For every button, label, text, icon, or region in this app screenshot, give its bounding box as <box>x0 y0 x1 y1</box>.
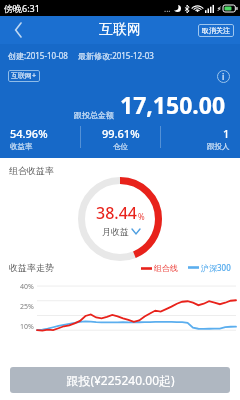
staticText: ⚡ <box>217 5 222 12</box>
staticText: 创建:2015-10-08 <box>8 50 68 61</box>
staticText: 收益率 <box>10 142 33 151</box>
staticText: 傍晚6:31 <box>4 2 40 14</box>
staticText: 组合线 <box>154 263 178 273</box>
staticText: % <box>138 211 145 222</box>
button[interactable]: Info <box>214 67 232 85</box>
button[interactable]: 互联网+ <box>8 70 40 82</box>
staticText: 25% <box>20 302 34 312</box>
staticText: 54.96% <box>10 126 48 141</box>
staticText: 互联网+ <box>11 71 37 81</box>
staticText: 组合收益率 <box>9 165 54 176</box>
staticText: 10% <box>20 322 34 332</box>
staticText: 仓位 <box>113 142 128 151</box>
staticText: ... <box>164 3 171 14</box>
button[interactable]: 取消关注 <box>198 24 234 37</box>
button[interactable]: 1 <box>161 126 230 151</box>
staticText: 互联网 <box>99 21 141 39</box>
staticText: 38.44 <box>96 202 137 224</box>
button[interactable]: 99.61% <box>81 126 160 151</box>
staticText: 沪深300 <box>201 262 231 273</box>
staticText: 99.61% <box>102 126 140 141</box>
staticText: 40% <box>20 282 34 292</box>
staticText: i <box>222 71 225 82</box>
staticText: 17,150.00 <box>120 89 226 120</box>
staticText: 取消关注 <box>202 26 230 35</box>
staticText: 1 <box>223 126 230 141</box>
staticText: 月收益 <box>102 226 129 237</box>
staticText: 最新修改:2015-12-03 <box>78 50 154 61</box>
button[interactable]: 38.44 <box>77 176 163 262</box>
staticText: 跟投(¥225240.00起) <box>66 372 175 388</box>
staticText: 跟投总金额 <box>74 110 114 120</box>
button[interactable]: Back <box>0 16 36 44</box>
button[interactable]: 跟投(¥225240.00起) <box>10 367 230 393</box>
button[interactable]: 54.96% <box>10 126 80 151</box>
staticText: 收益率走势 <box>9 262 54 273</box>
staticText: 跟投人 <box>207 142 230 151</box>
